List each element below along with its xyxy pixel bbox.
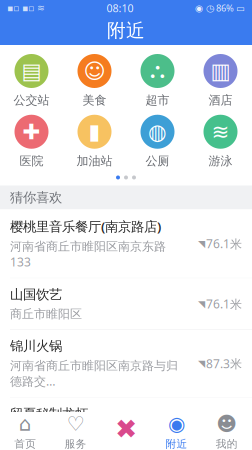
button[interactable]: ✚ <box>2 115 60 168</box>
staticText: 附近 <box>165 437 187 450</box>
staticText: ◥ <box>198 238 205 249</box>
staticText: ◥ <box>198 299 205 309</box>
staticText: 锦川火锅 <box>10 338 62 354</box>
button[interactable]: ◉ <box>151 413 202 450</box>
staticText: 76.1米 <box>206 236 242 252</box>
button[interactable]: ◍ <box>128 115 186 168</box>
staticText: ▤ <box>21 59 41 83</box>
button[interactable]: 山国饮艺 <box>0 278 252 330</box>
staticText: 樱桃里音乐餐厅(南京路店) <box>10 217 161 235</box>
staticText: ☻ <box>216 413 237 435</box>
staticText: 附近 <box>107 19 145 42</box>
button[interactable]: ▮ <box>65 115 123 168</box>
staticText: ≋ <box>211 120 229 144</box>
staticText: 河南省商丘市睢阳区南京路与归德路交… <box>10 358 178 389</box>
staticText: ▥ <box>210 59 230 83</box>
staticText: 公交站 <box>13 93 49 108</box>
button[interactable]: ▤ <box>2 54 60 108</box>
button[interactable]: 留夏秘制龙虾 <box>0 397 252 450</box>
staticText: 留夏秘制龙虾 <box>10 405 88 422</box>
staticText: ◍ <box>148 120 167 144</box>
button[interactable]: ⌂ <box>0 413 50 450</box>
staticText: 服务 <box>65 437 87 450</box>
staticText: ▪▫ ▪▫ ≋ <box>7 3 45 13</box>
staticText: ◉ ◷ 86% ▭ <box>195 2 245 14</box>
staticText: 河南省商丘市睢阳区南京东路133 <box>10 239 166 270</box>
staticText: 加油站 <box>76 154 112 168</box>
staticText: ⌂ <box>19 413 32 435</box>
staticText: 美食 <box>82 93 106 108</box>
staticText: ◉ <box>168 413 185 435</box>
staticText: 猜你喜欢 <box>10 189 62 206</box>
button[interactable]: 扫一扫 <box>109 412 143 446</box>
button[interactable]: ⛬ <box>128 54 186 108</box>
staticText: 111.5米 <box>199 416 242 432</box>
button[interactable]: 锦川火锅 <box>0 330 252 398</box>
button[interactable]: ▥ <box>191 54 249 108</box>
staticText: 商丘市睢阳区 <box>10 307 82 321</box>
staticText: ⛬ <box>150 61 165 81</box>
button[interactable]: ≋ <box>191 115 249 168</box>
staticText: 公厕 <box>145 154 169 168</box>
staticText: 我的 <box>216 437 238 450</box>
button[interactable]: 樱桃里音乐餐厅(南京路店) <box>0 209 252 278</box>
staticText: ✚ <box>22 120 40 144</box>
staticText: ✖ <box>115 414 137 444</box>
button[interactable]: ☺ <box>65 54 123 108</box>
staticText: 与归叉口500米(底捞火锅楼) <box>10 426 159 442</box>
staticText: 医院 <box>19 154 43 168</box>
button[interactable]: ♡ <box>50 413 101 450</box>
staticText: 76.1米 <box>206 296 242 312</box>
button[interactable] <box>101 410 151 450</box>
staticText <box>123 410 128 437</box>
button[interactable]: ☻ <box>202 413 252 450</box>
staticText: ♡ <box>67 413 85 435</box>
staticText: ▮ <box>88 120 100 144</box>
staticText: 酒店 <box>208 93 232 108</box>
staticText: ◥ <box>198 358 205 369</box>
staticText: ☺ <box>83 59 105 83</box>
staticText: 山国饮艺 <box>10 286 62 303</box>
staticText: 87.3米 <box>206 355 242 371</box>
staticText: 08:10 <box>106 1 133 15</box>
staticText: 游泳 <box>208 154 232 168</box>
staticText: 首页 <box>14 437 36 450</box>
staticText: 超市 <box>145 93 169 108</box>
